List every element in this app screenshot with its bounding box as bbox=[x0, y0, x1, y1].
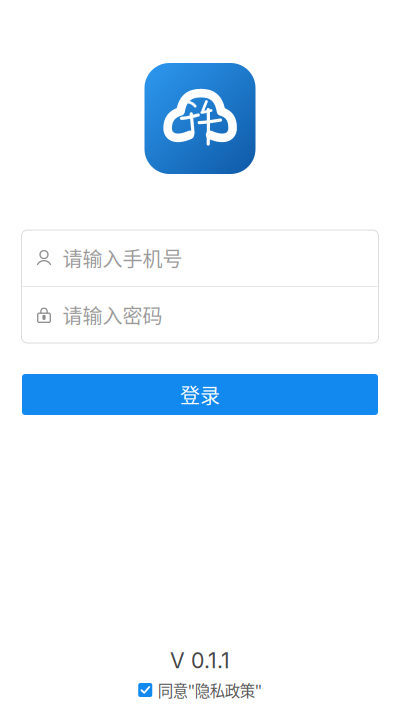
staticText: 请输入手机号 bbox=[62, 243, 182, 272]
staticText: 同意"隐私政策" bbox=[158, 679, 262, 701]
staticText: 登录 bbox=[180, 380, 220, 409]
button[interactable]: 同意"隐私政策" bbox=[138, 682, 262, 698]
button[interactable]: 登录 bbox=[22, 374, 378, 415]
staticText: 请输入密码 bbox=[62, 300, 162, 329]
staticText: V 0.1.1 bbox=[170, 648, 230, 673]
